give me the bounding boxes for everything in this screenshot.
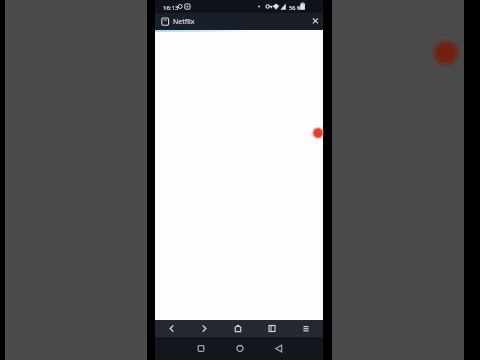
staticText: Netflix	[173, 17, 195, 27]
button[interactable]	[189, 337, 213, 360]
button[interactable]	[228, 337, 252, 360]
button[interactable]	[267, 337, 291, 360]
staticText: 56 %	[289, 4, 302, 11]
button[interactable]	[255, 320, 289, 337]
button[interactable]	[308, 123, 328, 143]
button[interactable]	[188, 320, 221, 337]
button[interactable]	[221, 320, 255, 337]
button[interactable]	[155, 320, 188, 337]
button[interactable]	[306, 13, 323, 30]
button[interactable]	[289, 320, 323, 337]
staticText: 16:13	[163, 4, 179, 12]
